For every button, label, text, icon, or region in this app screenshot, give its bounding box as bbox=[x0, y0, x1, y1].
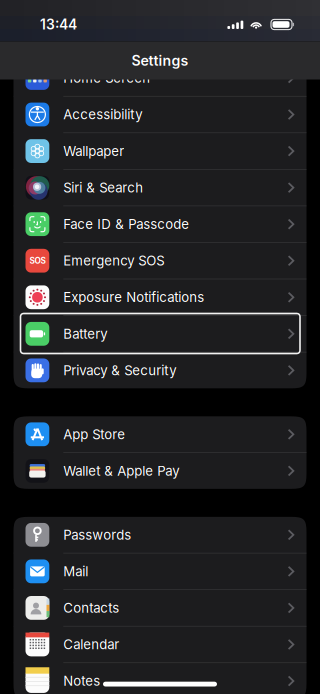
staticText: Mail bbox=[63, 563, 88, 579]
staticText: Calendar bbox=[63, 636, 119, 652]
staticText: 13:44 bbox=[40, 16, 77, 33]
button[interactable]: Passwords bbox=[13, 517, 306, 553]
button[interactable]: Wallpaper bbox=[13, 133, 306, 169]
staticText: Wallpaper bbox=[63, 143, 124, 159]
button[interactable]: Face ID & Passcode bbox=[13, 206, 306, 242]
staticText: Passwords bbox=[63, 527, 131, 543]
staticText: Contacts bbox=[63, 600, 119, 616]
button[interactable]: Privacy & Security bbox=[13, 352, 306, 388]
staticText: SOS bbox=[29, 256, 45, 266]
staticText: Emergency SOS bbox=[63, 253, 164, 269]
button[interactable]: Calendar bbox=[13, 626, 306, 662]
staticText: Settings bbox=[131, 52, 188, 69]
button[interactable]: Battery bbox=[13, 316, 306, 352]
button[interactable]: Mail bbox=[13, 553, 306, 589]
staticText: Siri & Search bbox=[63, 180, 143, 196]
button[interactable]: SOS bbox=[13, 243, 306, 279]
button[interactable]: Notes bbox=[13, 663, 306, 694]
staticText: Battery bbox=[63, 326, 107, 342]
staticText: Notes bbox=[63, 673, 100, 689]
button[interactable]: Contacts bbox=[13, 590, 306, 626]
staticText: Face ID & Passcode bbox=[63, 216, 189, 232]
button[interactable]: Accessibility bbox=[13, 97, 306, 133]
staticText: Exposure Notifications bbox=[63, 289, 204, 305]
staticText: Wallet & Apple Pay bbox=[63, 463, 179, 479]
button[interactable]: Exposure Notifications bbox=[13, 279, 306, 315]
staticText: Accessibility bbox=[63, 106, 142, 122]
button[interactable]: Siri & Search bbox=[13, 170, 306, 206]
staticText: App Store bbox=[63, 426, 125, 442]
staticText: Home Screen bbox=[63, 70, 150, 86]
button[interactable]: Wallet & Apple Pay bbox=[13, 453, 306, 489]
button[interactable]: Home Screen bbox=[13, 60, 306, 96]
staticText: Privacy & Security bbox=[63, 362, 176, 378]
button[interactable]: App Store bbox=[13, 416, 306, 452]
